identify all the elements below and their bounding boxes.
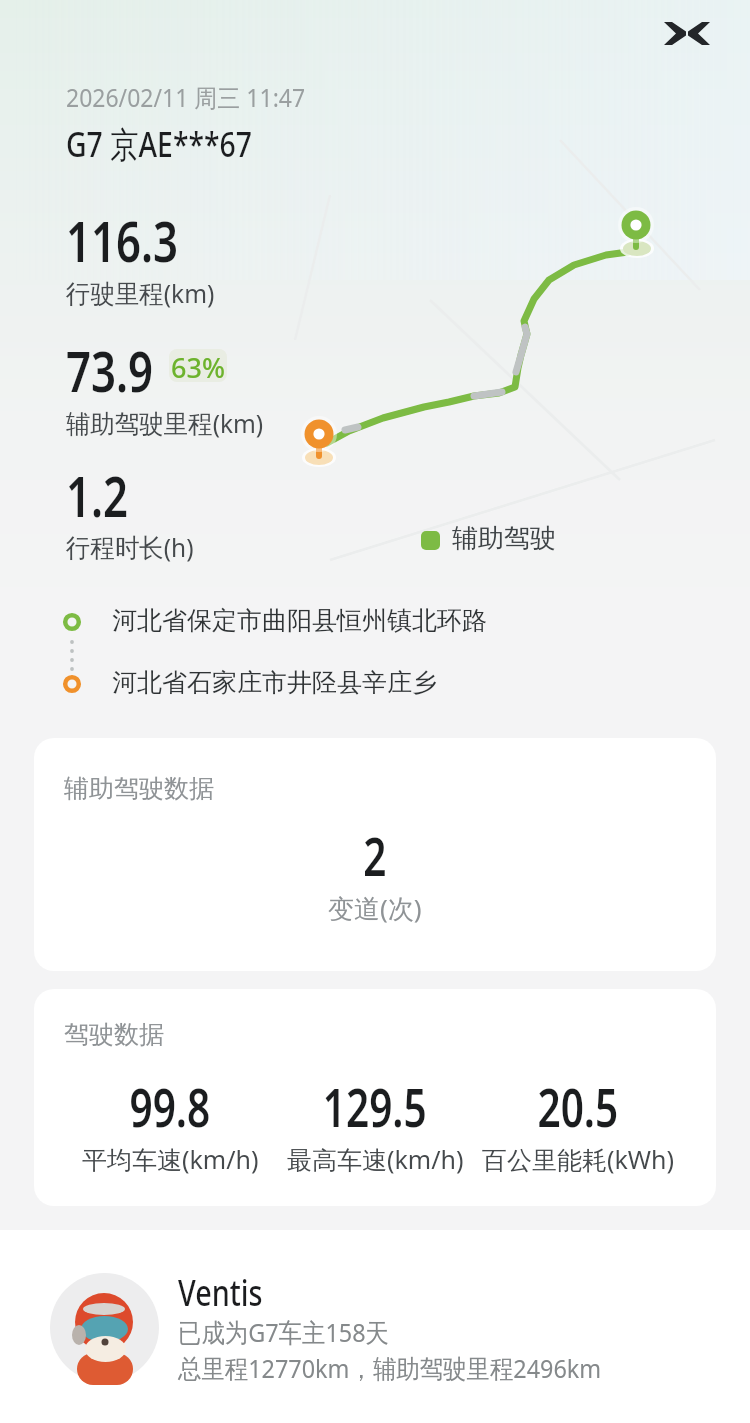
staticText: 变道(次) <box>328 890 422 926</box>
staticText: 2026/02/11 周三 11:47 <box>66 80 305 114</box>
staticText: 驾驶数据 <box>64 1019 164 1050</box>
staticText: 河北省保定市曲阳县恒州镇北环路 <box>112 605 487 636</box>
staticText: Ventis <box>178 1268 263 1317</box>
button[interactable]: Ventis <box>0 1230 750 1423</box>
staticText: 2 <box>363 820 387 891</box>
staticText: 116.3 <box>66 202 178 278</box>
button[interactable] <box>656 14 718 54</box>
button[interactable]: 河北省保定市曲阳县恒州镇北环路 <box>100 600 600 645</box>
staticText: 1.2 <box>66 457 128 533</box>
staticText: 99.8 <box>129 1071 210 1142</box>
button[interactable]: 辅助驾驶数据 <box>34 738 716 971</box>
staticText: 最高车速(km/h) <box>287 1142 464 1176</box>
staticText: G7 京AE***67 <box>66 120 252 168</box>
staticText: 总里程12770km，辅助驾驶里程2496km <box>178 1350 602 1386</box>
staticText: 辅助驾驶里程(km) <box>66 405 263 441</box>
staticText: 73.9 <box>66 332 153 408</box>
button[interactable]: 驾驶数据 <box>34 989 716 1206</box>
staticText: 河北省石家庄市井陉县辛庄乡 <box>112 667 437 698</box>
staticText: 20.5 <box>537 1071 618 1142</box>
staticText: 行程时长(h) <box>66 529 194 565</box>
staticText: 辅助驾驶数据 <box>64 773 214 804</box>
button[interactable]: 河北省石家庄市井陉县辛庄乡 <box>100 662 600 707</box>
staticText: 行驶里程(km) <box>66 275 214 311</box>
staticText: 已成为G7车主158天 <box>178 1314 389 1350</box>
staticText: 平均车速(km/h) <box>82 1142 259 1176</box>
staticText: 辅助驾驶 <box>452 522 556 555</box>
staticText: 百公里能耗(kWh) <box>482 1142 675 1176</box>
staticText: 63% <box>171 349 225 382</box>
staticText: 129.5 <box>323 1071 427 1142</box>
